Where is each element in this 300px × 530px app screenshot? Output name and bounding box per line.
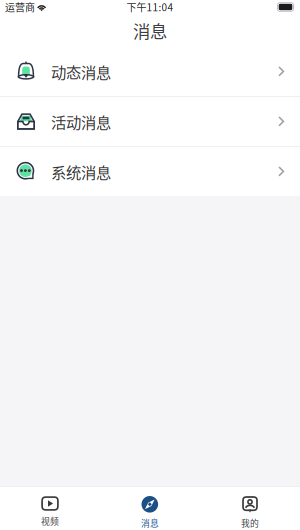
button[interactable]: 系统消息 <box>0 147 300 196</box>
button[interactable]: 活动消息 <box>0 97 300 146</box>
staticText: 动态消息 <box>51 60 111 83</box>
button[interactable]: 我的 <box>200 487 300 530</box>
staticText: 消息 <box>141 516 159 529</box>
staticText: 运营商 <box>5 0 35 14</box>
button[interactable]: 消息 <box>100 487 200 530</box>
staticText: 我的 <box>241 516 259 529</box>
staticText: 下午11:04 <box>126 0 173 14</box>
button[interactable]: 视频 <box>0 487 100 530</box>
staticText: 系统消息 <box>51 160 111 183</box>
staticText: 视频 <box>41 514 59 527</box>
staticText: 消息 <box>133 18 167 43</box>
button[interactable]: 动态消息 <box>0 47 300 96</box>
staticText: 活动消息 <box>51 110 111 133</box>
